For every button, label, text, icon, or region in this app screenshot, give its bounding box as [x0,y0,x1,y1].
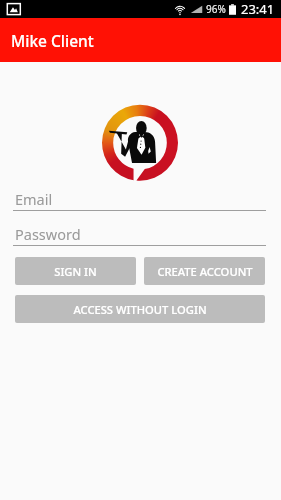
button[interactable]: Email [13,188,266,211]
staticText: ACCESS WITHOUT LOGIN [73,302,207,317]
staticText: SIGN IN [54,264,97,279]
staticText: 96% [206,2,226,16]
staticText: Password [15,224,81,244]
button[interactable]: SIGN IN [15,257,136,285]
button[interactable]: ACCESS WITHOUT LOGIN [15,295,265,323]
staticText: CREATE ACCOUNT [157,264,253,279]
staticText: Mike Client [11,30,94,51]
button[interactable]: CREATE ACCOUNT [144,257,265,285]
staticText: 23:41 [241,0,275,18]
button[interactable]: Password [13,223,266,246]
staticText: Email [15,189,53,209]
